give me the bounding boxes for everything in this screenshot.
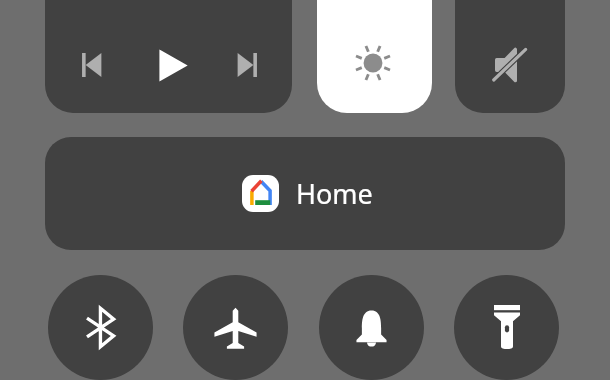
button[interactable]: Brightness bbox=[317, 0, 432, 113]
button[interactable]: Next track bbox=[223, 41, 271, 89]
button[interactable]: Bluetooth bbox=[48, 275, 153, 380]
button[interactable]: Play bbox=[147, 41, 195, 89]
button[interactable]: Home bbox=[45, 137, 565, 250]
button[interactable]: Previous track bbox=[68, 41, 116, 89]
button[interactable]: Previous track bbox=[45, 0, 292, 113]
staticText: Home bbox=[296, 175, 373, 212]
button[interactable]: Mute bbox=[455, 0, 565, 113]
button[interactable]: Flashlight bbox=[454, 275, 559, 380]
button[interactable]: Do not disturb bbox=[319, 275, 424, 380]
button[interactable]: Airplane mode bbox=[183, 275, 288, 380]
